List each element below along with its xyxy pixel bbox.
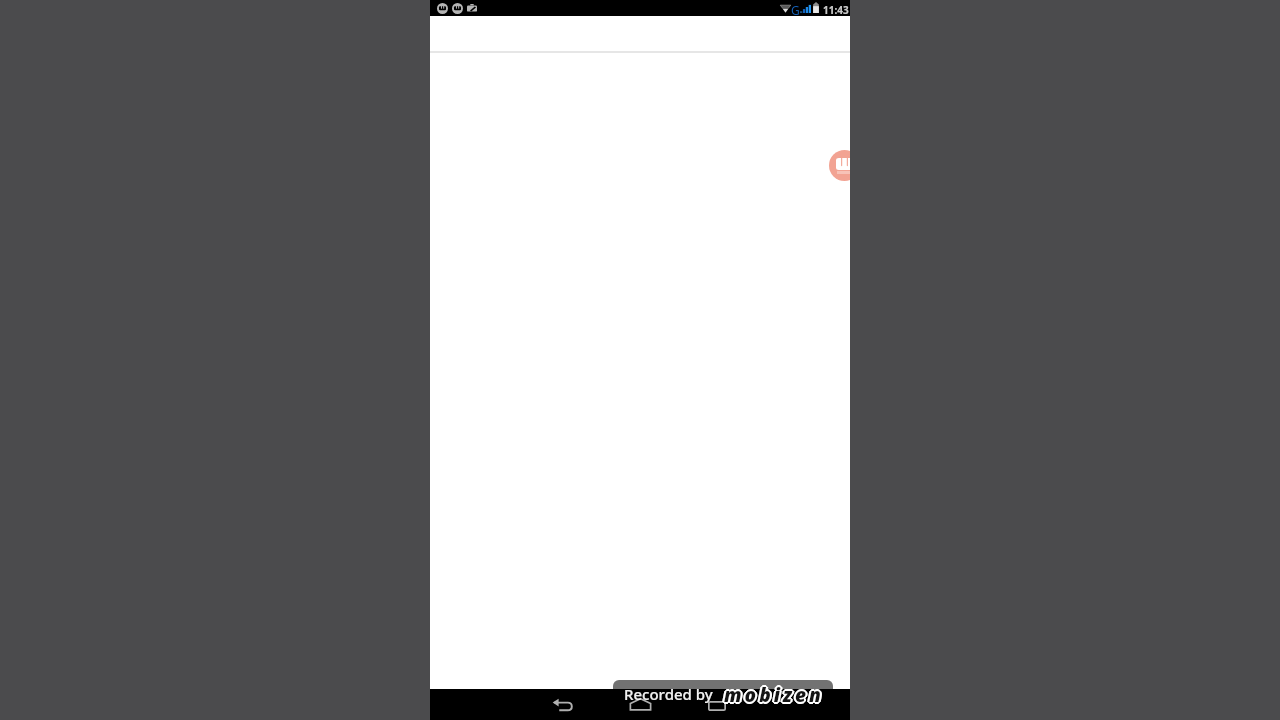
button[interactable]: Home xyxy=(629,698,652,711)
staticText: mobizen xyxy=(724,681,824,707)
staticText: mobizen xyxy=(723,681,823,707)
staticText: mobizen xyxy=(724,683,824,709)
staticText: mobizen xyxy=(725,682,825,708)
staticText: mobizen xyxy=(724,684,824,710)
staticText: 11:43 xyxy=(823,3,849,17)
staticText: mobizen xyxy=(723,683,823,709)
staticText: mobizen xyxy=(724,680,824,706)
staticText: mobizen xyxy=(725,681,825,707)
staticText: mobizen xyxy=(725,683,825,709)
button[interactable]: Back xyxy=(552,698,574,712)
button[interactable]: Mobizen recorder xyxy=(829,150,850,181)
staticText: mobizen xyxy=(722,682,822,708)
staticText: mobizen xyxy=(724,682,824,708)
staticText: mobizen xyxy=(724,682,824,708)
staticText: G xyxy=(791,2,800,18)
staticText: mobizen xyxy=(726,682,826,708)
button[interactable]: Recent apps xyxy=(708,701,726,711)
staticText: Recorded by xyxy=(624,684,713,704)
staticText: mobizen xyxy=(723,682,823,708)
